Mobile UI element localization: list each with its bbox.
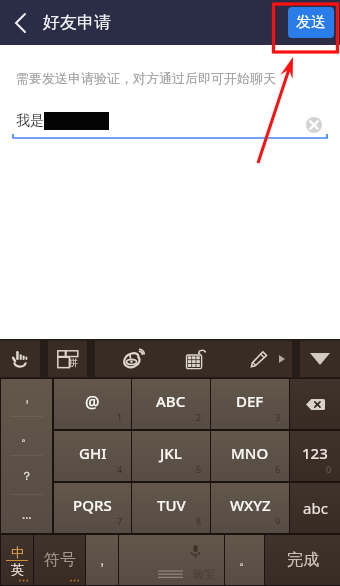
staticText: 符号 bbox=[44, 550, 76, 570]
staticText: 2 bbox=[196, 411, 202, 423]
staticText: ， bbox=[96, 553, 108, 568]
staticText: 拼 bbox=[69, 357, 78, 368]
button[interactable]: 123 bbox=[290, 431, 340, 481]
button[interactable]: 中 bbox=[1, 535, 33, 585]
button[interactable]: ABC bbox=[132, 379, 210, 429]
button[interactable]: Backspace bbox=[290, 379, 340, 429]
button[interactable]: ？ bbox=[1, 456, 52, 494]
staticText: 好友申请 bbox=[43, 12, 111, 33]
staticText: DEF bbox=[236, 391, 264, 411]
button[interactable]: Hide keyboard bbox=[300, 341, 340, 377]
staticText: abc bbox=[303, 498, 328, 518]
staticText: 9 bbox=[275, 515, 281, 527]
staticText: … bbox=[22, 506, 32, 522]
button[interactable]: Numbers bbox=[179, 342, 213, 376]
staticText: 1 bbox=[117, 411, 123, 423]
button[interactable]: JKL bbox=[132, 431, 210, 481]
staticText: 5 bbox=[196, 463, 202, 475]
staticText: 英 bbox=[11, 561, 24, 577]
staticText: 8 bbox=[196, 515, 202, 527]
button[interactable]: @ bbox=[54, 379, 131, 429]
staticText: 中 bbox=[11, 544, 24, 560]
button[interactable]: Back bbox=[0, 0, 40, 45]
button[interactable]: Space bbox=[119, 535, 224, 585]
staticText: ？ bbox=[21, 468, 33, 483]
staticText: 我是 bbox=[16, 112, 44, 130]
button[interactable]: 发送 bbox=[288, 7, 334, 38]
staticText: 6 bbox=[275, 463, 281, 475]
staticText: 需要发送申请验证，对方通过后即可开始聊天 bbox=[16, 70, 276, 86]
staticText: 。 bbox=[239, 553, 251, 568]
button[interactable]: PQRS bbox=[54, 483, 131, 533]
button[interactable]: TUV bbox=[132, 483, 210, 533]
staticText: 0 bbox=[326, 463, 332, 475]
staticText: @ bbox=[85, 391, 100, 413]
staticText: ABC bbox=[156, 391, 186, 411]
staticText: 3 bbox=[275, 411, 281, 423]
button[interactable]: 。 bbox=[1, 417, 52, 455]
staticText: GHI bbox=[79, 443, 107, 463]
button[interactable]: DEF bbox=[211, 379, 289, 429]
staticText: MNO bbox=[231, 443, 269, 463]
staticText: 发送 bbox=[296, 13, 326, 32]
button[interactable]: Draw bbox=[242, 342, 276, 376]
staticText: ， bbox=[21, 390, 33, 405]
staticText: 123 bbox=[302, 443, 328, 463]
staticText: 验宝 bbox=[193, 567, 215, 581]
button[interactable]: 。 bbox=[225, 535, 264, 585]
staticText: WXYZ bbox=[230, 495, 271, 515]
staticText: 完成 bbox=[287, 550, 319, 570]
button[interactable]: WXYZ bbox=[211, 483, 289, 533]
staticText: TUV bbox=[157, 495, 186, 515]
button[interactable]: ， bbox=[1, 379, 52, 416]
button[interactable]: Weibo bbox=[117, 342, 151, 376]
staticText: 。 bbox=[21, 429, 33, 444]
button[interactable]: Keyboard layout bbox=[48, 341, 87, 377]
button[interactable]: 符号 bbox=[34, 535, 85, 585]
staticText: JKL bbox=[160, 443, 182, 463]
staticText: PQRS bbox=[73, 495, 112, 515]
button[interactable]: MNO bbox=[211, 431, 289, 481]
button[interactable]: ， bbox=[86, 535, 118, 585]
button[interactable]: … bbox=[1, 495, 52, 533]
button[interactable]: GHI bbox=[54, 431, 131, 481]
staticText: 7 bbox=[117, 515, 123, 527]
button[interactable]: abc bbox=[290, 483, 340, 533]
button[interactable]: Handwriting bbox=[0, 341, 40, 377]
button[interactable]: 完成 bbox=[265, 535, 340, 585]
button[interactable]: Clear text bbox=[306, 117, 322, 133]
staticText: 4 bbox=[117, 463, 123, 475]
